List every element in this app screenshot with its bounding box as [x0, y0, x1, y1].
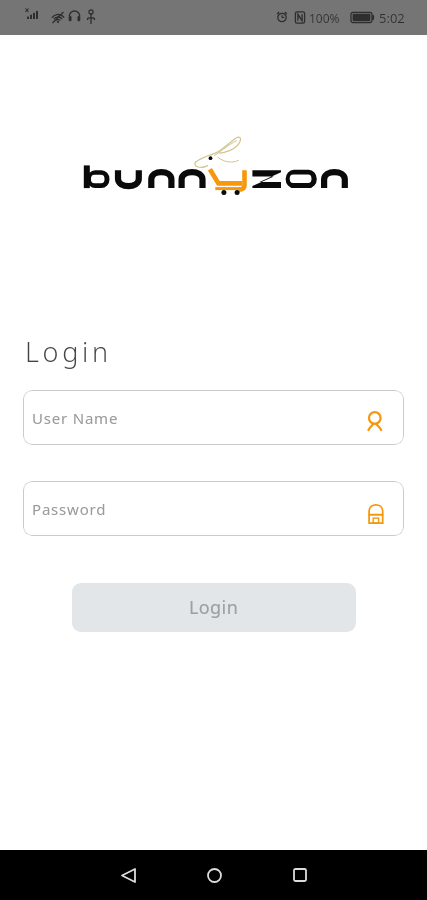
staticText: Login — [189, 595, 239, 620]
button[interactable]: Home — [185, 850, 243, 900]
button[interactable]: Password — [23, 481, 404, 536]
staticText: 5:02 — [379, 9, 405, 27]
button[interactable]: Back — [99, 850, 157, 900]
button[interactable]: Recents — [271, 850, 329, 900]
staticText: 100% — [309, 10, 340, 26]
staticText: User Name — [32, 408, 366, 428]
button[interactable]: Login — [72, 583, 356, 632]
staticText: Login — [25, 333, 112, 370]
button[interactable]: User Name — [23, 390, 404, 445]
staticText: Password — [32, 499, 366, 519]
